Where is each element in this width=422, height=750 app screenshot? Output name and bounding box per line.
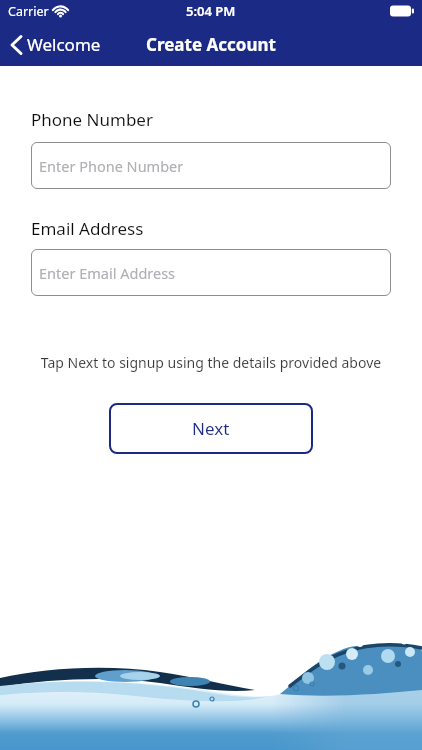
- button[interactable]: Welcome: [10, 33, 101, 56]
- staticText: Create Account: [146, 33, 276, 56]
- button[interactable]: Next: [109, 403, 313, 454]
- staticText: Phone Number: [31, 108, 153, 131]
- staticText: Enter Email Address: [39, 263, 176, 283]
- button[interactable]: Enter Phone Number: [31, 142, 391, 189]
- staticText: Tap Next to signup using the details pro…: [31, 353, 391, 372]
- staticText: Carrier: [8, 3, 49, 20]
- staticText: Welcome: [27, 33, 101, 56]
- staticText: Next: [192, 417, 230, 440]
- button[interactable]: Enter Email Address: [31, 249, 391, 296]
- staticText: Email Address: [31, 217, 144, 240]
- staticText: Enter Phone Number: [39, 156, 184, 176]
- staticText: 5:04 PM: [186, 2, 236, 20]
